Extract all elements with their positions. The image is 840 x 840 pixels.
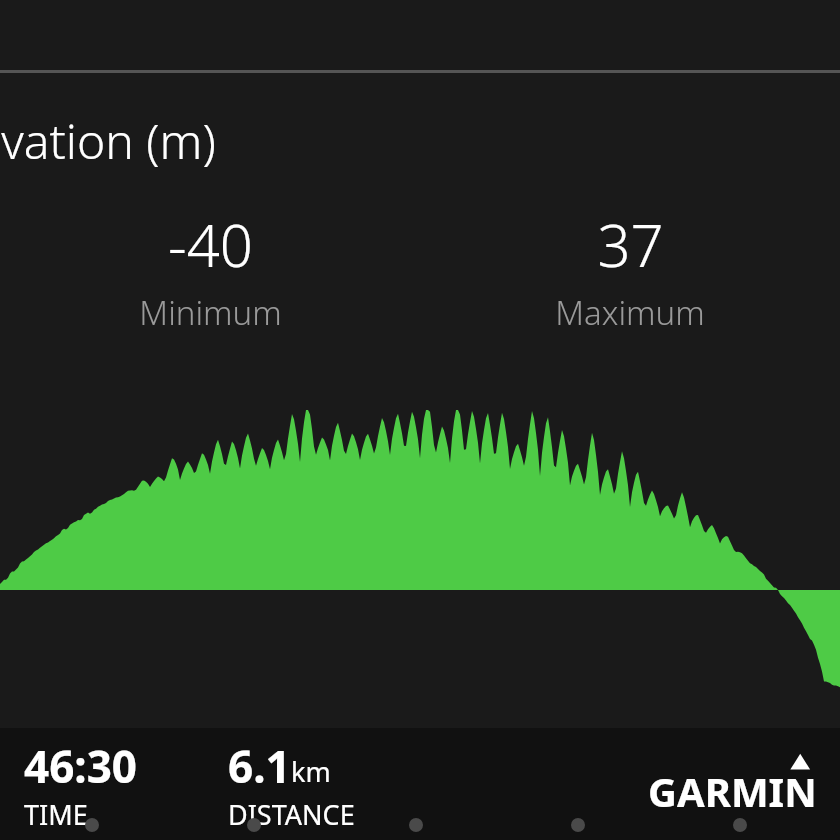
button[interactable]: -40 [0, 205, 420, 335]
staticText: Maximum [555, 290, 705, 335]
button[interactable]: 46:30 [24, 736, 138, 833]
staticText: 37 [597, 205, 664, 284]
button[interactable]: Garmin [648, 752, 820, 806]
button[interactable]: 6.1 [228, 736, 355, 833]
staticText: DISTANCE [228, 796, 355, 833]
staticText: Minimum [139, 290, 282, 335]
staticText: -40 [168, 205, 253, 284]
staticText: Elevation (m) [0, 108, 216, 173]
button[interactable]: Elevation profile chart [0, 420, 840, 730]
button[interactable]: 37 [420, 205, 840, 335]
staticText: 46:30 [24, 736, 138, 796]
staticText: km [291, 753, 331, 790]
staticText: 6.1 [228, 736, 291, 796]
staticText: GARMIN [648, 764, 817, 818]
staticText: TIME [24, 796, 88, 833]
